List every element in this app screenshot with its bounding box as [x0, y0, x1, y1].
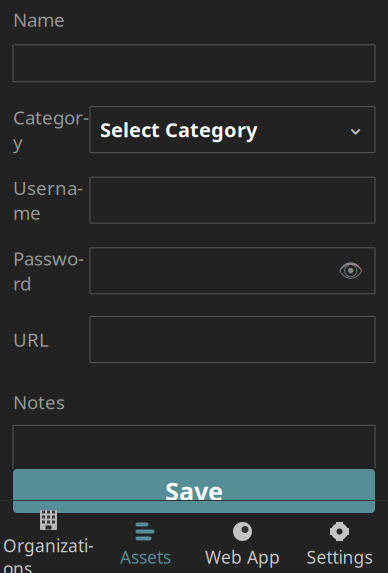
staticText: Select Category: [100, 116, 257, 143]
button[interactable]: 👁: [90, 248, 375, 294]
staticText: URL: [13, 327, 49, 352]
button[interactable]: Assets: [97, 519, 194, 570]
staticText: Notes: [13, 389, 65, 414]
button[interactable]: [90, 316, 375, 362]
button[interactable]: Select Category: [90, 107, 375, 153]
staticText: Category: [13, 105, 89, 154]
button[interactable]: [90, 177, 375, 223]
staticText: Settings: [306, 545, 372, 568]
staticText: Name: [13, 7, 65, 32]
staticText: ⌄: [346, 114, 365, 139]
button[interactable]: Save: [13, 469, 375, 513]
button[interactable]: Organizations: [0, 508, 97, 573]
staticText: Username: [13, 175, 83, 225]
button[interactable]: [13, 414, 375, 487]
button[interactable]: [13, 32, 375, 82]
staticText: Password: [13, 246, 84, 296]
staticText: Web App: [205, 545, 280, 568]
staticText: 👁: [338, 259, 363, 282]
button[interactable]: Web App: [194, 519, 291, 570]
staticText: Save: [165, 474, 223, 508]
button[interactable]: Settings: [291, 519, 388, 570]
staticText: Assets: [120, 545, 171, 568]
staticText: Organizations: [3, 534, 94, 573]
